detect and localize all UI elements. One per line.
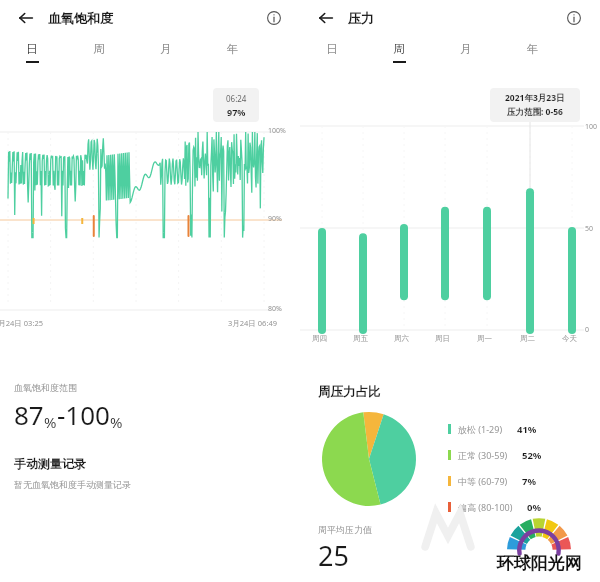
staticText: 50 xyxy=(585,224,594,234)
staticText: 80% xyxy=(268,304,282,314)
staticText: 87 xyxy=(14,397,44,432)
staticText: 暂无血氧饱和度手动测量记录 xyxy=(14,479,131,490)
button[interactable]: 偏高 (80-100) xyxy=(448,494,600,520)
staticText: 血氧饱和度范围 xyxy=(14,382,77,393)
staticText: 偏高 (80-100) xyxy=(458,501,513,513)
button[interactable] xyxy=(322,412,416,506)
staticText: 25 xyxy=(318,537,349,574)
staticText: 正常 (30-59) xyxy=(458,449,508,461)
staticText: 月 xyxy=(460,42,472,56)
button[interactable]: 周 xyxy=(383,42,415,70)
button[interactable]: 月 xyxy=(450,42,482,70)
staticText: 年 xyxy=(527,42,539,56)
staticText: 环球阳光网 xyxy=(478,553,600,574)
staticText: 周五 xyxy=(353,334,368,343)
staticText: 中等 (60-79) xyxy=(458,475,508,487)
button[interactable]: 周 xyxy=(83,42,115,70)
staticText: 月 xyxy=(160,42,172,56)
button[interactable]: 放松 (1-29) xyxy=(448,416,600,442)
button[interactable]: 日 xyxy=(316,42,348,70)
staticText: 周 xyxy=(93,42,105,56)
staticText: 周四 xyxy=(312,334,327,343)
staticText: 年 xyxy=(227,42,239,56)
button[interactable]: 年 xyxy=(517,42,549,70)
staticText: 周一 xyxy=(477,334,492,343)
staticText: 日 xyxy=(326,42,338,56)
staticText: 周日 xyxy=(435,334,450,343)
button[interactable]: 月 xyxy=(150,42,182,70)
staticText: 100 xyxy=(585,122,598,132)
staticText: 血氧饱和度 xyxy=(48,10,113,26)
staticText: 7% xyxy=(522,475,537,488)
button[interactable]: 日 xyxy=(16,42,48,70)
staticText: 周二 xyxy=(520,334,535,343)
staticText: 今天 xyxy=(562,334,577,343)
staticText: 3月24日 06:49 xyxy=(228,318,277,328)
staticText: 90% xyxy=(268,214,282,224)
staticText: 手动测量记录 xyxy=(14,456,86,471)
button[interactable]: Back xyxy=(314,6,338,30)
staticText: 06:24 xyxy=(226,93,247,104)
staticText: 压力范围: 0-56 xyxy=(507,106,563,118)
button[interactable]: 06:24 xyxy=(213,88,259,122)
staticText: 52% xyxy=(522,449,542,462)
staticText: -100 xyxy=(57,397,110,432)
staticText: 放松 (1-29) xyxy=(458,423,503,435)
staticText: 41% xyxy=(517,423,537,436)
button[interactable]: 中等 (60-79) xyxy=(448,468,600,494)
button[interactable]: Back xyxy=(14,6,38,30)
staticText: 周压力占比 xyxy=(318,384,381,400)
button[interactable]: 正常 (30-59) xyxy=(448,442,600,468)
staticText: 周 xyxy=(393,42,405,56)
staticText: 0 xyxy=(585,325,590,335)
button[interactable]: 年 xyxy=(217,42,249,70)
staticText: 周六 xyxy=(394,334,409,343)
button[interactable]: Info xyxy=(562,6,586,30)
staticText: 100% xyxy=(268,126,286,136)
staticText: 周平均压力值 xyxy=(318,524,372,535)
button[interactable]: Info xyxy=(262,6,286,30)
staticText: 日 xyxy=(26,42,38,56)
staticText: % xyxy=(110,412,123,432)
staticText: 压力 xyxy=(348,10,374,26)
staticText: 97% xyxy=(227,106,246,118)
staticText: % xyxy=(44,412,57,432)
staticText: 2021年3月23日 xyxy=(505,92,565,104)
staticText: 0% xyxy=(527,501,542,514)
button[interactable]: 2021年3月23日 xyxy=(490,88,580,122)
staticText: 3月24日 03:25 xyxy=(0,318,43,328)
